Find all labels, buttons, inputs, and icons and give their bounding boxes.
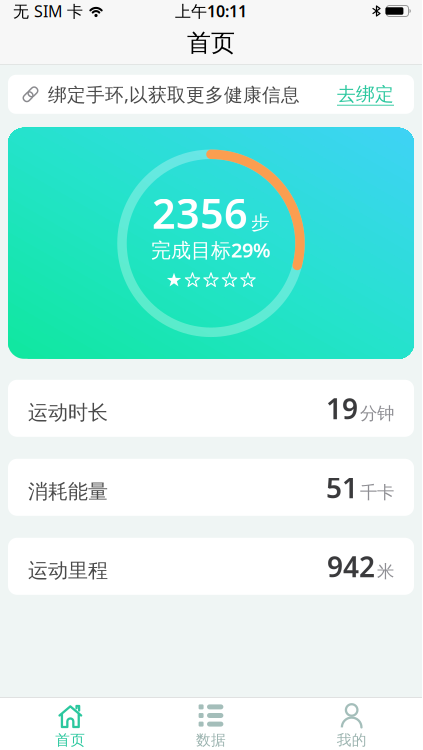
staticText: 运动时长 (28, 400, 108, 425)
staticText: 米 (377, 561, 394, 582)
staticText: 运动里程 (28, 558, 108, 583)
staticText: 数据 (196, 731, 226, 749)
button[interactable]: 我的 (281, 704, 422, 749)
staticText: 去绑定 (337, 83, 394, 106)
staticText: 绑定手环,以获取更多健康信息 (48, 82, 300, 107)
staticText: 51 (326, 469, 358, 506)
staticText: 首页 (55, 731, 85, 749)
staticText: 消耗能量 (28, 479, 108, 504)
staticText: 分钟 (360, 403, 394, 424)
staticText: 942 (327, 548, 375, 585)
staticText: 完成目标29% (151, 236, 271, 263)
staticText: 无 SIM 卡 (13, 0, 83, 22)
button[interactable]: 绑定手环,以获取更多健康信息 (8, 75, 414, 114)
staticText: 步 (251, 211, 270, 234)
staticText: 首页 (187, 28, 235, 58)
button[interactable]: 数据 (141, 704, 281, 749)
staticText: 19 (326, 390, 358, 427)
button[interactable]: 首页 (0, 704, 141, 749)
staticText: 上午10:11 (175, 0, 247, 22)
staticText: 我的 (337, 731, 367, 749)
staticText: 2356 (152, 185, 248, 240)
staticText: 千卡 (360, 482, 394, 503)
